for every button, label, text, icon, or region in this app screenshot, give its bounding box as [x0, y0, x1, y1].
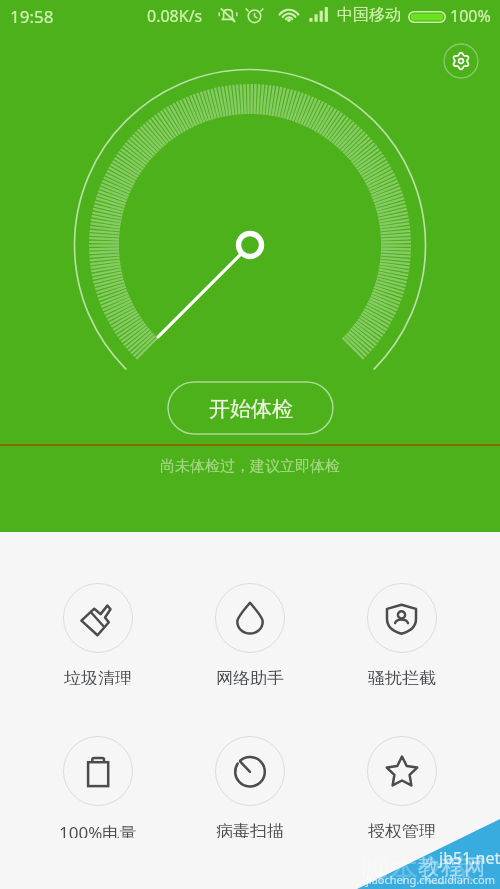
- button[interactable]: 垃圾清理: [22, 532, 174, 685]
- button[interactable]: 100%电量: [22, 685, 174, 838]
- staticText: 授权管理: [368, 821, 436, 838]
- staticText: 网络助手: [216, 668, 284, 685]
- staticText: 脚本之家: [360, 852, 476, 889]
- staticText: 教程网: [417, 854, 486, 880]
- staticText: 病毒扫描: [216, 821, 284, 838]
- button[interactable]: Settings: [443, 43, 479, 79]
- staticText: 19:58: [10, 5, 54, 28]
- button[interactable]: 病毒扫描: [174, 685, 326, 838]
- button[interactable]: 开始体检: [167, 381, 334, 435]
- button[interactable]: 授权管理: [326, 685, 478, 838]
- button[interactable]: 骚扰拦截: [326, 532, 478, 685]
- staticText: 垃圾清理: [64, 668, 132, 685]
- staticText: 100%: [450, 5, 491, 27]
- staticText: 骚扰拦截: [368, 668, 436, 685]
- staticText: 尚未体检过，建议立即体检: [160, 457, 340, 476]
- staticText: jb51.net: [439, 847, 500, 869]
- button[interactable]: 网络助手: [174, 532, 326, 685]
- staticText: 0.08K/s: [147, 5, 203, 27]
- staticText: 中国移动: [337, 5, 401, 25]
- staticText: 开始体检: [209, 396, 293, 422]
- staticText: 100%电量: [59, 821, 137, 838]
- staticText: jiaocheng.chedidian.com: [366, 872, 495, 887]
